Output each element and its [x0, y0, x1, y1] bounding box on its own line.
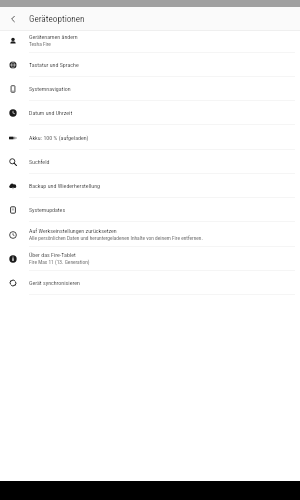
staticText: Datum und Uhrzeit	[29, 109, 73, 116]
staticText: Suchfeld	[29, 158, 50, 165]
staticText: Systemnavigation	[29, 85, 71, 92]
staticText: Fire Max 11 (13. Generation)	[29, 259, 90, 265]
button[interactable]: Systemnavigation	[0, 77, 300, 101]
button[interactable]: Gerätenamen ändern	[0, 29, 300, 53]
staticText: Über das Fire-Tablet	[29, 251, 76, 258]
staticText: Backup und Wiederherstellung	[29, 182, 101, 189]
staticText: Akku: 100 % (aufgeladen)	[29, 134, 89, 141]
staticText: Gerät synchronisieren	[29, 279, 80, 286]
staticText: Gerätenamen ändern	[29, 33, 78, 40]
button[interactable]: Backup und Wiederherstellung	[0, 174, 300, 198]
staticText: Auf Werkseinstellungen zurücksetzen	[29, 227, 117, 234]
staticText: Tesha Fire	[29, 41, 51, 47]
staticText: Geräteoptionen	[29, 13, 85, 24]
button[interactable]: Tastatur und Sprache	[0, 53, 300, 77]
button[interactable]: Suchfeld	[0, 150, 300, 174]
staticText: Systemupdates	[29, 206, 66, 213]
button[interactable]: Zurück	[0, 7, 25, 30]
staticText: Alle persönlichen Daten und heruntergela…	[29, 235, 203, 241]
button[interactable]: Über das Fire-Tablet	[0, 247, 300, 271]
button[interactable]: Akku: 100 % (aufgeladen)	[0, 126, 300, 150]
button[interactable]: Systemupdates	[0, 198, 300, 222]
button[interactable]: Datum und Uhrzeit	[0, 101, 300, 125]
staticText: Tastatur und Sprache	[29, 61, 79, 68]
button[interactable]: Auf Werkseinstellungen zurücksetzen	[0, 223, 300, 247]
button[interactable]: Gerät synchronisieren	[0, 271, 300, 295]
